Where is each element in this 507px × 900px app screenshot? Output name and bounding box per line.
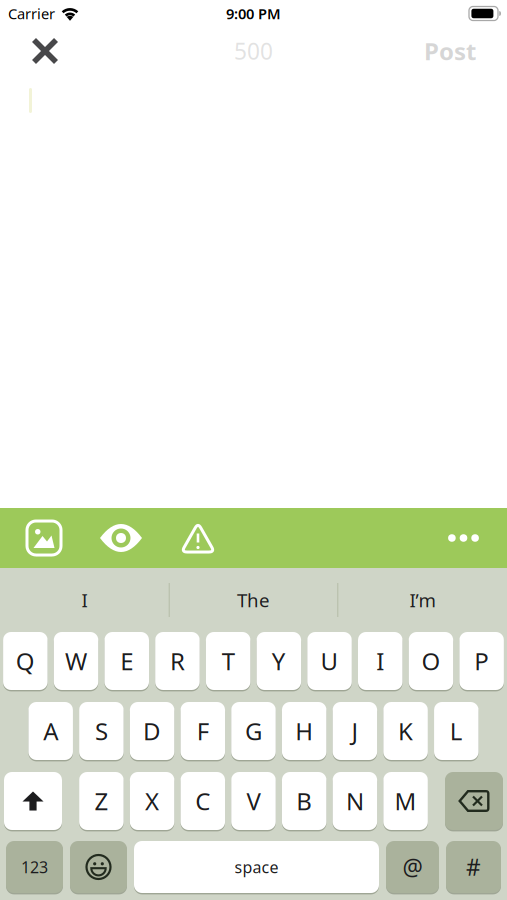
staticText: @ xyxy=(402,852,422,882)
staticText: I’m xyxy=(409,588,435,612)
staticText: Y xyxy=(272,645,286,677)
button[interactable]: T xyxy=(206,632,250,690)
button[interactable]: Shift xyxy=(4,772,62,830)
button[interactable]: Close xyxy=(0,27,71,75)
staticText: H xyxy=(295,715,313,747)
button[interactable]: X xyxy=(130,772,174,830)
button[interactable]: More options xyxy=(438,508,507,568)
staticText: N xyxy=(346,785,364,817)
button[interactable]: K xyxy=(383,702,428,760)
button[interactable]: D xyxy=(130,702,174,760)
button[interactable]: G xyxy=(231,702,276,760)
staticText: T xyxy=(222,645,235,677)
staticText: space xyxy=(234,856,278,878)
button[interactable]: H xyxy=(282,702,326,760)
button[interactable]: I’m xyxy=(338,568,506,632)
staticText: C xyxy=(195,785,210,817)
button[interactable]: C xyxy=(181,772,225,830)
staticText: Z xyxy=(94,785,108,817)
button[interactable]: Q xyxy=(3,632,48,690)
button[interactable]: A xyxy=(28,702,73,760)
staticText: E xyxy=(120,645,133,677)
staticText: V xyxy=(246,785,260,817)
button[interactable]: J xyxy=(333,702,377,760)
staticText: S xyxy=(95,715,108,747)
staticText: W xyxy=(65,645,87,677)
staticText: F xyxy=(197,715,209,747)
button[interactable]: I xyxy=(1,568,169,632)
button[interactable]: # xyxy=(446,841,501,893)
button[interactable]: P xyxy=(459,632,504,690)
button[interactable]: The xyxy=(170,568,337,632)
button[interactable]: @ xyxy=(386,841,439,893)
button[interactable]: Emoji xyxy=(70,841,127,893)
button[interactable]: U xyxy=(307,632,352,690)
button[interactable]: N xyxy=(333,772,377,830)
staticText: I xyxy=(82,588,88,612)
button[interactable]: M xyxy=(383,772,428,830)
staticText: O xyxy=(421,645,440,677)
staticText: K xyxy=(398,715,413,747)
staticText: Q xyxy=(16,645,35,677)
staticText: Carrier xyxy=(8,4,55,23)
button[interactable]: Post xyxy=(424,27,507,75)
staticText: X xyxy=(145,785,159,817)
staticText: A xyxy=(43,715,58,747)
staticText: J xyxy=(351,715,358,747)
button[interactable]: F xyxy=(181,702,225,760)
staticText: G xyxy=(245,715,262,747)
button[interactable]: Content visibility xyxy=(82,508,160,568)
button[interactable]: B xyxy=(282,772,326,830)
staticText: P xyxy=(474,645,489,677)
button[interactable]: S xyxy=(79,702,124,760)
button[interactable]: R xyxy=(155,632,200,690)
staticText: L xyxy=(450,715,463,747)
staticText: The xyxy=(237,588,270,612)
button[interactable]: Delete xyxy=(445,772,503,830)
staticText: B xyxy=(296,785,312,817)
button[interactable]: Y xyxy=(257,632,301,690)
staticText: D xyxy=(143,715,161,747)
staticText: # xyxy=(466,852,481,882)
button[interactable]: 123 xyxy=(6,841,63,893)
button[interactable]: E xyxy=(104,632,149,690)
button[interactable]: I xyxy=(358,632,402,690)
staticText: Post xyxy=(424,35,476,67)
staticText: 9:00 PM xyxy=(226,4,281,23)
staticText: 123 xyxy=(21,856,48,878)
staticText: U xyxy=(320,645,338,677)
button[interactable]: space xyxy=(134,841,379,893)
button[interactable]: O xyxy=(409,632,453,690)
staticText: I xyxy=(376,645,384,677)
button[interactable]: Attach photo xyxy=(0,508,82,568)
staticText: R xyxy=(170,645,185,677)
button[interactable]: Content warning xyxy=(160,508,236,567)
button[interactable]: V xyxy=(231,772,276,830)
staticText: M xyxy=(395,785,417,817)
button[interactable]: Z xyxy=(79,772,124,830)
button[interactable]: L xyxy=(434,702,478,760)
staticText: 500 xyxy=(234,36,273,66)
button[interactable]: W xyxy=(54,632,98,690)
